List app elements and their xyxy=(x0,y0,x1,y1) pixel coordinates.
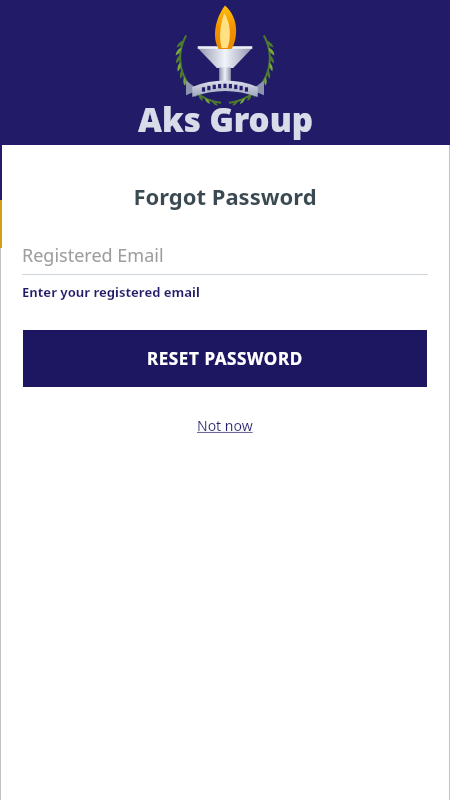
staticText: RESET PASSWORD xyxy=(147,347,303,370)
staticText: Registered Email xyxy=(22,243,164,268)
button[interactable]: Not now xyxy=(187,413,263,438)
staticText: Aks Group xyxy=(138,97,313,142)
button[interactable]: Registered Email xyxy=(22,236,428,274)
button[interactable]: RESET PASSWORD xyxy=(23,330,427,387)
staticText: Enter your registered email xyxy=(22,283,200,301)
staticText: Not now xyxy=(197,416,253,435)
staticText: Forgot Password xyxy=(0,181,450,211)
